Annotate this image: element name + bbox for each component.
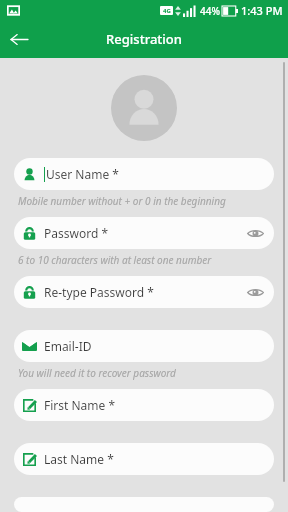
button[interactable]: Re-type Password *: [14, 276, 274, 308]
staticText: Mobile number without + or 0 in the begi…: [18, 194, 226, 208]
button[interactable]: Show password: [244, 281, 266, 303]
staticText: Last Name *: [44, 451, 114, 467]
button[interactable]: Password *: [14, 217, 274, 249]
staticText: Email-ID: [44, 338, 92, 354]
staticText: You will need it to recover password: [18, 366, 176, 380]
staticText: Re-type Password *: [44, 284, 154, 300]
button[interactable]: Last Name *: [14, 443, 274, 475]
staticText: First Name *: [44, 397, 116, 413]
button[interactable]: Show password: [244, 222, 266, 244]
staticText: 6 to 10 characters with at least one num…: [18, 253, 212, 267]
button[interactable]: Email-ID: [14, 330, 274, 362]
staticText: Password *: [44, 225, 109, 241]
staticText: 44%: [200, 4, 220, 18]
button[interactable]: Profile photo: [111, 75, 177, 141]
staticText: User Name *: [46, 166, 119, 182]
staticText: 1:43 PM: [241, 3, 283, 18]
staticText: 4G: [163, 7, 171, 15]
button[interactable]: User Name *: [14, 158, 274, 190]
button[interactable]: First Name *: [14, 389, 274, 421]
button[interactable]: Back: [4, 24, 34, 54]
staticText: Registration: [106, 30, 182, 48]
